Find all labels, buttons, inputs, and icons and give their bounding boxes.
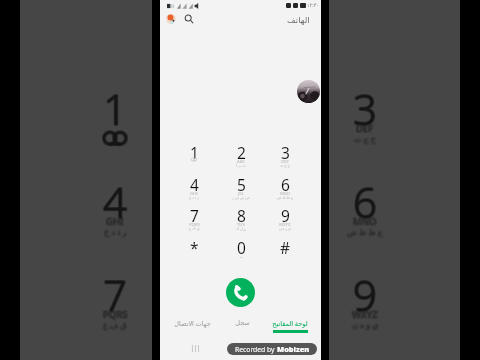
staticText: MNO bbox=[353, 216, 377, 229]
staticText: 3 bbox=[354, 80, 378, 137]
staticText: WXYZ bbox=[351, 307, 377, 320]
staticText: ح ج ث bbox=[353, 134, 376, 145]
staticText: 1 bbox=[104, 79, 128, 136]
staticText: WXYZ bbox=[279, 222, 291, 228]
staticText: ر ذ د خ bbox=[103, 227, 126, 238]
staticText: 9 bbox=[352, 267, 376, 324]
staticText: ر ذ د خ bbox=[105, 226, 128, 237]
staticText: ع ظ ط ض bbox=[347, 227, 383, 238]
staticText: PQRS bbox=[189, 222, 200, 228]
staticText: 6 bbox=[352, 174, 376, 231]
staticText: ص ش س ز bbox=[232, 195, 250, 200]
staticText: PQRS bbox=[104, 309, 129, 322]
staticText: 6 bbox=[354, 172, 378, 229]
staticText: ABC bbox=[237, 159, 246, 165]
staticText: GHI bbox=[106, 214, 124, 227]
button[interactable]: * bbox=[171, 238, 217, 269]
staticText: 6 bbox=[353, 172, 377, 229]
staticText: TUV bbox=[237, 222, 246, 228]
staticText: ع ظ ط ض bbox=[277, 195, 293, 200]
staticText: MNO bbox=[352, 214, 376, 227]
staticText: GHI bbox=[105, 216, 123, 229]
staticText: DEF bbox=[356, 123, 374, 136]
button[interactable]: سجل bbox=[215, 319, 269, 339]
staticText: ع ظ ط ض bbox=[346, 226, 382, 237]
staticText: ي و ه ن bbox=[353, 319, 380, 330]
staticText: ق ف غ bbox=[102, 320, 126, 331]
staticText: 7 bbox=[190, 205, 199, 226]
staticText: ع ظ ط ض bbox=[348, 225, 384, 236]
staticText: 1 bbox=[190, 142, 199, 163]
staticText: MNO bbox=[353, 215, 377, 228]
staticText: 1 bbox=[102, 80, 126, 137]
button[interactable]: Open menu bbox=[166, 14, 176, 24]
staticText: ق ف غ bbox=[189, 226, 200, 231]
staticText: ق ف غ bbox=[103, 319, 127, 330]
button[interactable]: Recent apps bbox=[189, 342, 202, 355]
staticText: MNO bbox=[280, 191, 291, 197]
button[interactable]: 3 bbox=[262, 143, 308, 174]
staticText: ي و ه ن bbox=[352, 320, 379, 331]
staticText: ي و ه ن bbox=[353, 318, 380, 329]
staticText: 1 bbox=[104, 81, 128, 138]
staticText: WXYZ bbox=[352, 307, 378, 320]
staticText: PQRS bbox=[103, 308, 128, 321]
staticText: ع ظ ط ض bbox=[347, 225, 383, 236]
button[interactable]: 1 bbox=[171, 143, 217, 174]
staticText: WXYZ bbox=[351, 309, 377, 322]
staticText: 3 bbox=[353, 80, 377, 137]
staticText: ح ج ث bbox=[353, 133, 376, 144]
staticText: 6 bbox=[354, 173, 378, 230]
staticText: م ل ك bbox=[236, 226, 246, 231]
staticText: ع ظ ط ض bbox=[346, 227, 382, 238]
staticText: 0 bbox=[237, 237, 246, 258]
staticText: WXYZ bbox=[353, 309, 379, 322]
staticText: ر ذ د خ bbox=[105, 227, 128, 238]
staticText: 7 bbox=[102, 266, 126, 323]
button[interactable]: 4 bbox=[171, 175, 217, 206]
button[interactable]: جهات الاتصال bbox=[165, 319, 219, 339]
staticText: 7 bbox=[102, 265, 126, 322]
staticText: 9 bbox=[354, 265, 378, 322]
staticText: 7 bbox=[103, 267, 127, 324]
staticText: ق ف غ bbox=[103, 318, 127, 329]
staticText: ١٢:٣٠ bbox=[307, 2, 320, 9]
staticText: ر ذ د خ bbox=[103, 226, 126, 237]
button[interactable]: Search bbox=[184, 14, 194, 24]
button[interactable]: 2 bbox=[218, 143, 264, 174]
staticText: GHI bbox=[105, 215, 123, 228]
staticText: 7 bbox=[104, 265, 128, 322]
staticText: MNO bbox=[353, 214, 377, 227]
staticText: GHI bbox=[105, 214, 123, 227]
staticText: ح ج ث bbox=[354, 133, 377, 144]
staticText: ر ذ د خ bbox=[104, 227, 127, 238]
button[interactable]: 5 bbox=[218, 175, 264, 206]
staticText: Recorded by bbox=[235, 345, 277, 354]
staticText: ح ج ث bbox=[355, 132, 378, 143]
button[interactable]: 6 bbox=[262, 175, 308, 206]
staticText: GHI bbox=[107, 215, 125, 228]
staticText: 8 bbox=[237, 205, 246, 226]
button[interactable]: لوحة المفاتيح bbox=[263, 319, 317, 339]
button[interactable]: Call bbox=[226, 278, 255, 307]
staticText: 4 bbox=[104, 173, 128, 230]
staticText: لوحة المفاتيح bbox=[272, 319, 308, 328]
staticText: WXYZ bbox=[353, 308, 379, 321]
button[interactable]: 9 bbox=[262, 206, 308, 237]
button[interactable]: 7 bbox=[171, 206, 217, 237]
staticText: 7 bbox=[104, 266, 128, 323]
staticText: + bbox=[240, 254, 243, 260]
button[interactable]: 8 bbox=[218, 206, 264, 237]
button[interactable]: 0 bbox=[218, 238, 264, 269]
staticText: * bbox=[190, 237, 199, 258]
staticText: ي و ه ن bbox=[352, 318, 379, 329]
staticText: DEF bbox=[355, 123, 373, 136]
staticText: 3 bbox=[354, 81, 378, 138]
staticText: ح ج ث bbox=[355, 133, 378, 144]
staticText: 9 bbox=[354, 266, 378, 323]
staticText: 1 bbox=[103, 79, 127, 136]
button[interactable]: Profile picture bbox=[297, 80, 320, 103]
button[interactable]: # bbox=[262, 238, 308, 269]
staticText: MNO bbox=[352, 215, 376, 228]
staticText: 4 bbox=[104, 174, 128, 231]
